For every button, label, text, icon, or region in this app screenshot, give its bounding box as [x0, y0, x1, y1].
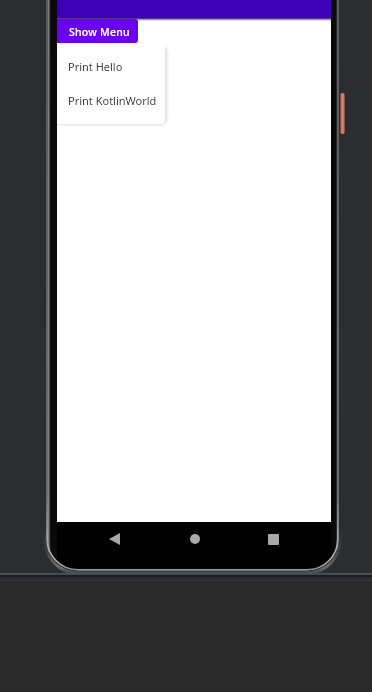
- button[interactable]: Home: [182, 522, 208, 556]
- staticText: Print KotlinWorld: [68, 93, 157, 108]
- button[interactable]: Back: [101, 522, 127, 556]
- staticText: Show Menu: [69, 25, 130, 39]
- button[interactable]: Print Hello: [57, 49, 165, 83]
- button[interactable]: Print KotlinWorld: [57, 83, 165, 117]
- button[interactable]: Show Menu: [57, 19, 138, 43]
- staticText: Print Hello: [68, 59, 123, 74]
- button[interactable]: Recent apps: [260, 522, 286, 556]
